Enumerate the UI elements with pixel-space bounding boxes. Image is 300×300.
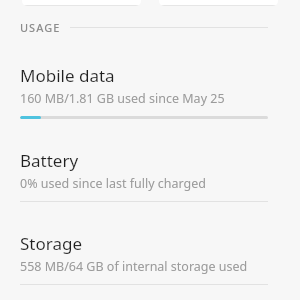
button[interactable]: Storage — [0, 232, 300, 285]
staticText: Battery — [20, 149, 79, 172]
staticText: Mobile data — [20, 64, 115, 87]
button[interactable] — [22, 0, 141, 6]
staticText: USAGE — [20, 20, 61, 35]
staticText: 558 MB/64 GB of internal storage used — [20, 258, 248, 275]
button[interactable]: Battery — [0, 149, 300, 202]
button[interactable]: Mobile data — [0, 64, 300, 119]
staticText: Storage — [20, 232, 83, 255]
button[interactable] — [159, 0, 278, 6]
staticText: 160 MB/1.81 GB used since May 25 — [20, 90, 225, 107]
staticText: 0% used since last fully charged — [20, 175, 207, 192]
